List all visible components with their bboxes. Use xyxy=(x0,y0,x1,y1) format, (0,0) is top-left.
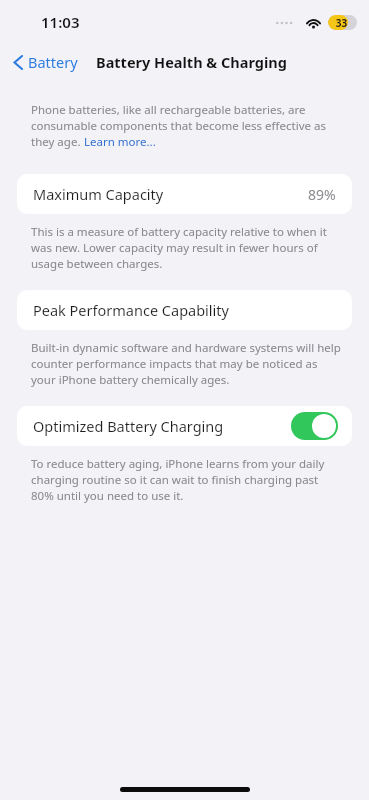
staticText: Maximum Capacity xyxy=(33,184,164,204)
staticText: This is a measure of battery capacity re… xyxy=(31,224,327,240)
staticText: consumable components that become less e… xyxy=(31,118,326,134)
staticText: Peak Performance Capability xyxy=(33,300,229,320)
staticText: Built-in dynamic software and hardware s… xyxy=(31,340,341,356)
staticText: Phone batteries, like all rechargeable b… xyxy=(31,102,306,118)
staticText: Optimized Battery Charging xyxy=(33,416,224,436)
staticText: 11:03 xyxy=(41,12,80,32)
staticText: was new. Lower capacity may result in fe… xyxy=(31,240,318,256)
button[interactable]: Optimized Battery Charging toggle xyxy=(291,412,338,440)
staticText: 89% xyxy=(308,185,336,204)
staticText: Battery Health & Charging xyxy=(96,52,287,72)
staticText: To reduce battery aging, iPhone learns f… xyxy=(31,456,325,472)
staticText: counter performance impacts that may be … xyxy=(31,356,318,372)
staticText: usage between charges. xyxy=(31,256,163,272)
staticText: charging routine so it can wait to finis… xyxy=(31,472,319,488)
staticText: they age. xyxy=(31,134,84,150)
staticText: 33 xyxy=(328,16,355,30)
staticText: 80% until you need to use it. xyxy=(31,488,184,504)
staticText: your iPhone battery chemically ages. xyxy=(31,372,230,388)
button[interactable]: Learn more... xyxy=(84,134,156,150)
button[interactable]: Optimized Battery Charging xyxy=(17,406,352,446)
button[interactable]: Peak Performance Capability xyxy=(17,290,352,330)
staticText: Battery xyxy=(28,52,78,72)
other: Back xyxy=(13,54,24,71)
button[interactable]: Back xyxy=(10,48,81,76)
button[interactable]: Maximum Capacity xyxy=(17,174,352,214)
